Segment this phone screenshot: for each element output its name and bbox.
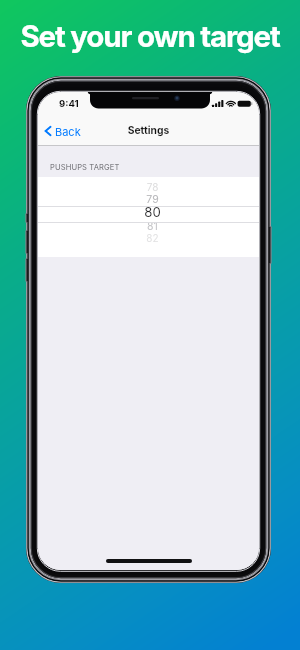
button[interactable]: 78 <box>38 177 259 257</box>
staticText: Back <box>55 125 81 138</box>
staticText: 80 <box>42 204 259 220</box>
staticText: Settings <box>38 124 259 136</box>
staticText: 78 <box>42 181 259 193</box>
button[interactable]: Back <box>38 120 87 142</box>
staticText: PUSHUPS TARGET <box>50 163 120 172</box>
staticText: 79 <box>42 193 259 206</box>
staticText: 9:41 <box>59 98 79 110</box>
staticText: Set your own target <box>0 18 300 54</box>
staticText: 81 <box>42 220 259 233</box>
other: Status icons <box>212 99 250 108</box>
